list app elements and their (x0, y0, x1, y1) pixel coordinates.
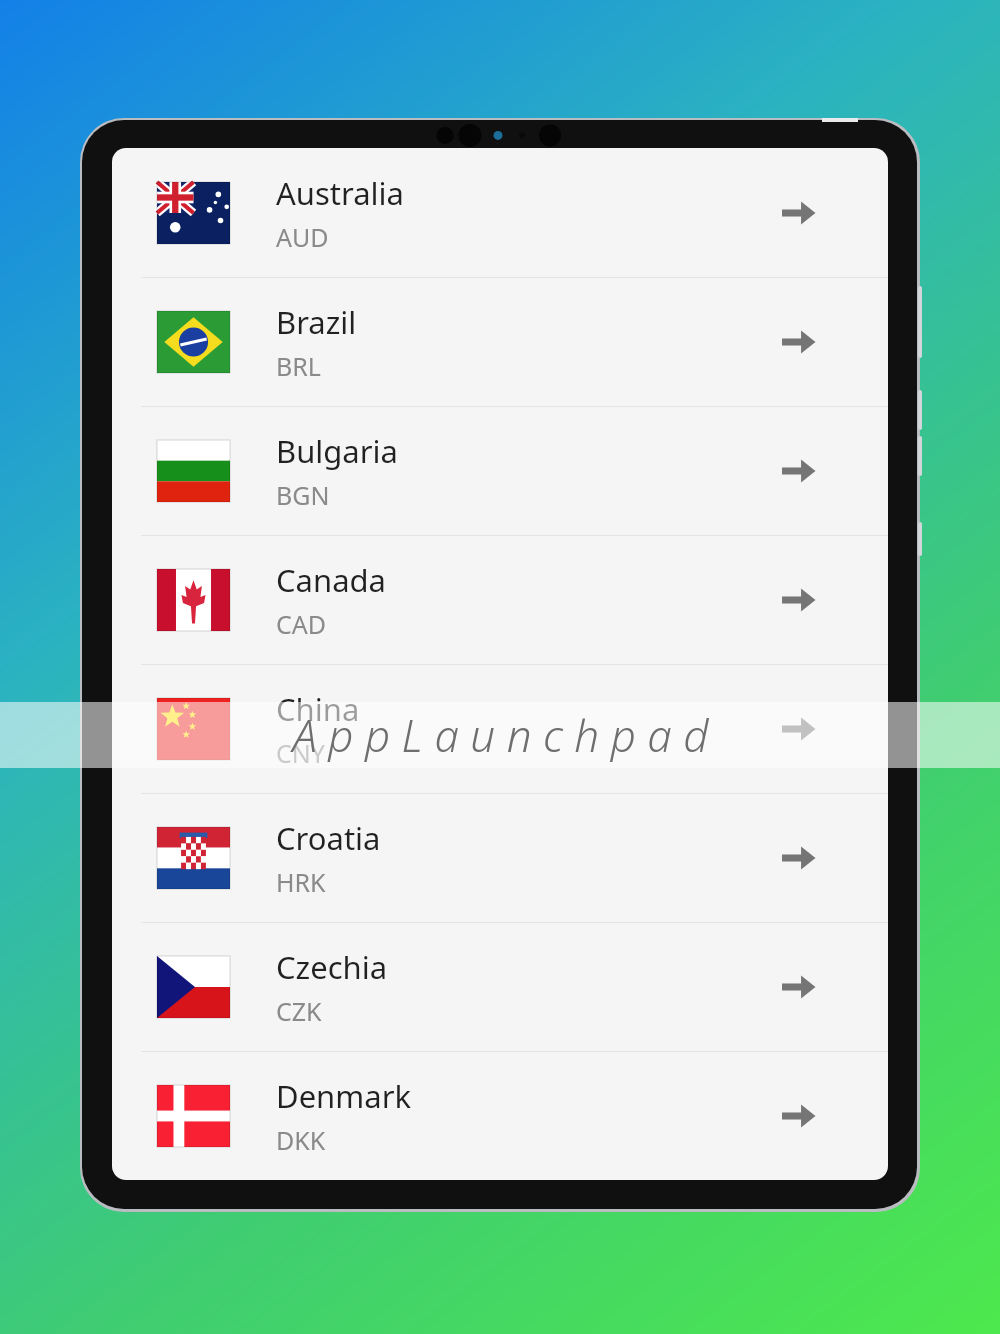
button[interactable]: Open Bulgaria (762, 435, 834, 507)
button[interactable]: Open Czechia (762, 951, 834, 1023)
staticText: A p p L a u n c h p a d (292, 705, 709, 765)
staticText: CNY (276, 736, 325, 770)
button[interactable]: Open Brazil (762, 306, 834, 378)
staticText: Australia (276, 172, 404, 214)
button[interactable]: Open China (762, 693, 834, 765)
staticText: CZK (276, 994, 322, 1028)
staticText: Czechia (276, 946, 388, 988)
button[interactable]: Canada (112, 535, 888, 664)
button[interactable]: China (112, 664, 888, 793)
button[interactable]: Open Canada (762, 564, 834, 636)
staticText: Denmark (276, 1075, 412, 1117)
staticText: Bulgaria (276, 430, 398, 472)
staticText: AUD (276, 220, 329, 254)
staticText: China (276, 688, 360, 730)
button[interactable]: Australia (112, 148, 888, 277)
staticText: BGN (276, 478, 330, 512)
staticText: Croatia (276, 817, 381, 859)
button[interactable]: Brazil (112, 277, 888, 406)
button[interactable]: Croatia (112, 793, 888, 922)
button[interactable]: Open Croatia (762, 822, 834, 894)
staticText: CAD (276, 607, 327, 641)
button[interactable]: Denmark (112, 1051, 888, 1180)
button[interactable]: Open Australia (762, 177, 834, 249)
staticText: Brazil (276, 301, 357, 343)
staticText: Canada (276, 559, 386, 601)
staticText: HRK (276, 865, 326, 899)
button[interactable]: Open Denmark (762, 1080, 834, 1152)
button[interactable]: Bulgaria (112, 406, 888, 535)
staticText: BRL (276, 349, 321, 383)
button[interactable]: Czechia (112, 922, 888, 1051)
staticText: DKK (276, 1123, 326, 1157)
